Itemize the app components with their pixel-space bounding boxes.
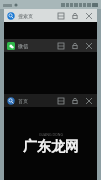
button[interactable]: 搜索页 (4, 9, 97, 22)
button[interactable]: Lock (70, 11, 80, 21)
button[interactable]: Menu (56, 96, 66, 106)
button[interactable]: Menu (56, 11, 66, 21)
button[interactable]: 微信 (4, 39, 97, 52)
button[interactable]: Close tab (84, 96, 94, 106)
staticText: GUANG DONG (39, 132, 63, 137)
staticText: 广东龙网 (23, 138, 79, 156)
staticText: 微信 (18, 43, 28, 49)
button[interactable]: Menu (56, 41, 66, 51)
button[interactable]: Close tab (84, 11, 94, 21)
staticText: 首页 (18, 98, 28, 104)
staticText: 搜索页 (18, 13, 33, 19)
button[interactable]: Lock (70, 96, 80, 106)
button[interactable]: Lock (70, 41, 80, 51)
button[interactable]: Close tab (84, 41, 94, 51)
button[interactable]: 首页 (4, 94, 97, 107)
